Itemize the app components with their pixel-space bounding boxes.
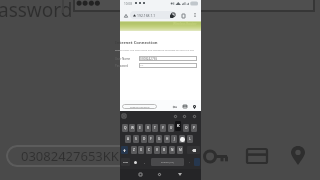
staticText: R <box>147 126 149 130</box>
button[interactable]: Enter <box>194 158 200 166</box>
button[interactable]: Switch tabs <box>168 11 177 20</box>
button[interactable]: Payment methods <box>180 103 189 110</box>
button[interactable]: B <box>161 146 167 154</box>
button[interactable]: E <box>137 124 143 132</box>
staticText: ?123 <box>123 161 128 164</box>
staticText: J <box>174 137 175 141</box>
button[interactable]: K <box>179 135 185 143</box>
staticText: U <box>170 126 173 130</box>
staticText: G <box>158 137 161 141</box>
staticText: W <box>131 126 134 130</box>
staticText: B <box>163 148 166 152</box>
button[interactable]: R <box>145 124 151 132</box>
button[interactable]: L <box>187 135 193 143</box>
button[interactable]: C <box>146 146 152 154</box>
button[interactable]: Addresses <box>291 146 305 165</box>
button[interactable]: Y <box>160 124 166 132</box>
staticText: H <box>166 137 169 141</box>
button[interactable]: Back <box>175 170 184 179</box>
staticText: ●●●● <box>76 0 101 7</box>
staticText: P <box>193 126 195 130</box>
button[interactable]: Bookmarks <box>179 11 188 20</box>
staticText: A <box>127 137 130 141</box>
staticText: D <box>143 137 146 141</box>
staticText: O <box>185 126 188 130</box>
staticText: Wireless Router <box>173 22 197 26</box>
button[interactable]: Q <box>122 124 128 132</box>
button[interactable]: H <box>164 135 170 143</box>
staticText: N <box>171 148 174 152</box>
button[interactable]: Period <box>186 158 192 166</box>
staticText: K <box>177 123 180 129</box>
button[interactable]: X <box>138 146 144 154</box>
button[interactable]: Home <box>155 170 164 179</box>
button[interactable]: More options <box>191 11 199 19</box>
button[interactable]: S <box>133 135 139 143</box>
button[interactable]: Clipboard <box>191 113 197 119</box>
staticText: Q <box>124 126 127 130</box>
button[interactable]: U <box>168 124 174 132</box>
staticText: 10:08 <box>124 2 132 6</box>
staticText: M <box>179 148 182 152</box>
button[interactable]: Z <box>131 146 137 154</box>
button[interactable]: Backspace <box>187 146 200 154</box>
staticText: User Name <box>115 57 131 61</box>
staticText: V <box>156 148 158 152</box>
button[interactable]: Home <box>122 12 129 19</box>
staticText: Z <box>133 148 135 152</box>
button[interactable]: Voice input <box>172 113 178 119</box>
staticText: C <box>148 148 151 152</box>
button[interactable]: 03082427653KKR <box>6 145 186 167</box>
button[interactable]: Emoji <box>132 158 139 166</box>
button[interactable]: J <box>171 135 177 143</box>
button[interactable]: Comma <box>141 158 148 166</box>
staticText: 192.168.1.1 <box>137 13 156 18</box>
button[interactable]: M <box>177 146 183 154</box>
button[interactable]: Addresses <box>190 103 198 110</box>
button[interactable]: O <box>183 124 189 132</box>
button[interactable]: W <box>129 124 135 132</box>
staticText: •••• <box>140 64 144 67</box>
staticText: E <box>139 126 141 130</box>
button[interactable]: Payment methods <box>247 149 267 163</box>
button[interactable]: 03082427653KKR <box>122 104 157 109</box>
staticText: 0308242765 <box>140 57 158 61</box>
staticText: assword <box>0 0 73 23</box>
button[interactable]: N <box>169 146 175 154</box>
button[interactable]: V <box>154 146 160 154</box>
staticText: Internet Connection <box>115 40 158 46</box>
button[interactable]: Recents <box>136 170 145 179</box>
button[interactable]: Shift <box>121 146 128 154</box>
staticText: X <box>140 148 142 152</box>
staticText: F <box>150 137 152 141</box>
staticText: Please enter the user name and password … <box>115 48 196 51</box>
staticText: . <box>189 160 190 164</box>
button[interactable]: A <box>125 135 131 143</box>
button[interactable]: 192.168.1.1 <box>130 11 175 19</box>
staticText: 03082427653KKR <box>130 105 150 108</box>
staticText: K <box>181 137 183 141</box>
staticText: Password <box>115 64 129 68</box>
button[interactable]: F <box>148 135 154 143</box>
button[interactable]: English (US) <box>151 158 184 166</box>
staticText: S <box>135 137 137 141</box>
staticText: Y <box>162 126 164 130</box>
button[interactable]: Settings <box>181 113 187 119</box>
staticText: L <box>189 137 191 141</box>
button[interactable]: Passwords <box>203 149 228 164</box>
staticText: 03082427653KKR <box>21 147 127 165</box>
staticText: , <box>144 160 145 164</box>
button[interactable]: D <box>141 135 147 143</box>
staticText: T <box>154 126 156 130</box>
button[interactable]: Passwords <box>170 103 179 110</box>
button[interactable]: P <box>191 124 197 132</box>
button[interactable]: Google search <box>121 113 127 119</box>
button[interactable]: G <box>156 135 162 143</box>
staticText: English (US) <box>161 161 174 164</box>
button[interactable]: ?123 <box>121 158 130 166</box>
button[interactable]: K <box>175 121 181 131</box>
button[interactable]: T <box>152 124 158 132</box>
